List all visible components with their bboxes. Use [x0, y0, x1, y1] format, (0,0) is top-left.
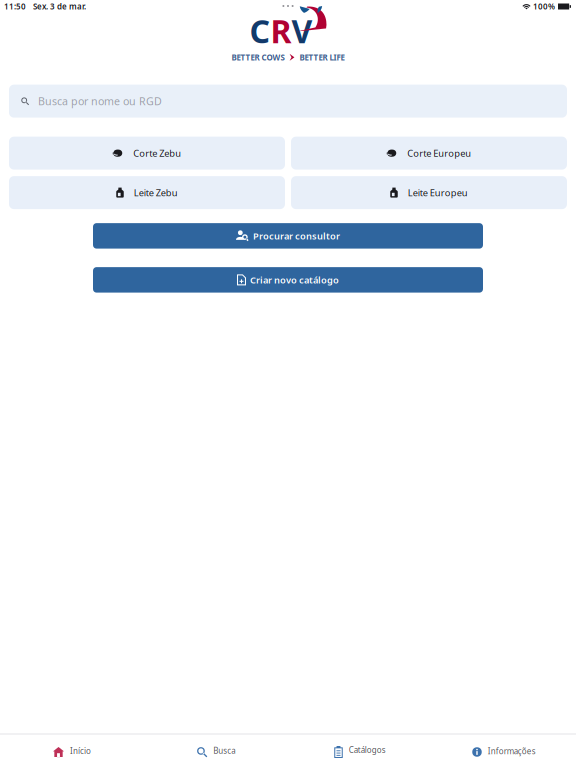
button[interactable]: Início: [0, 738, 144, 764]
staticText: R: [270, 9, 291, 52]
staticText: Catálogos: [349, 744, 386, 755]
staticText: 11:50: [4, 1, 26, 12]
staticText: BETTER LIFE: [299, 52, 344, 63]
staticText: Leite Europeu: [408, 186, 468, 199]
staticText: V: [291, 9, 312, 52]
staticText: Busca: [213, 745, 235, 756]
button[interactable]: Leite Zebu: [9, 176, 285, 209]
button[interactable]: Criar novo catálogo: [93, 267, 483, 293]
staticText: C: [249, 9, 270, 52]
staticText: Início: [70, 745, 91, 756]
staticText: 100%: [533, 1, 555, 12]
button[interactable]: Leite Europeu: [291, 176, 567, 209]
staticText: Sex. 3 de mar.: [33, 1, 86, 12]
button[interactable]: Catálogos: [288, 738, 432, 764]
staticText: Corte Europeu: [407, 147, 471, 159]
staticText: Informações: [488, 746, 536, 756]
staticText: Busca por nome ou RGD: [38, 94, 162, 108]
staticText: BETTER COWS: [231, 52, 284, 63]
staticText: Leite Zebu: [134, 186, 178, 199]
button[interactable]: Informações: [432, 738, 576, 764]
button[interactable]: Busca: [144, 738, 288, 764]
staticText: Criar novo catálogo: [250, 274, 339, 286]
button[interactable]: Corte Zebu: [9, 137, 285, 170]
staticText: Procurar consultor: [253, 230, 340, 242]
button[interactable]: Procurar consultor: [93, 223, 483, 249]
button[interactable]: Corte Europeu: [291, 137, 567, 170]
staticText: Corte Zebu: [133, 147, 181, 159]
